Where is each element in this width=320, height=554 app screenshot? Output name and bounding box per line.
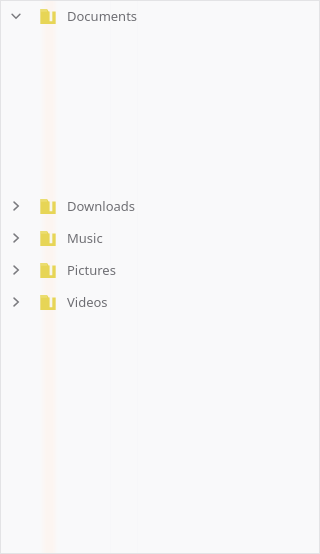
button[interactable]: Expand Pictures	[0, 254, 320, 286]
button[interactable]: Expand Videos	[0, 286, 320, 318]
staticText: Videos	[67, 293, 108, 311]
other: Expand Videos	[9, 295, 23, 309]
other: Expand Pictures	[9, 263, 23, 277]
other: Expand Downloads	[9, 199, 23, 213]
button[interactable]: Expand Downloads	[0, 190, 320, 222]
staticText: Documents	[67, 7, 138, 25]
staticText: Downloads	[67, 197, 136, 215]
staticText: Pictures	[67, 261, 116, 279]
other: Expand Music	[9, 231, 23, 245]
button[interactable]: Expand Music	[0, 222, 320, 254]
other: Collapse Documents	[9, 9, 23, 23]
button[interactable]: Collapse Documents	[0, 0, 320, 32]
staticText: Music	[67, 229, 103, 247]
